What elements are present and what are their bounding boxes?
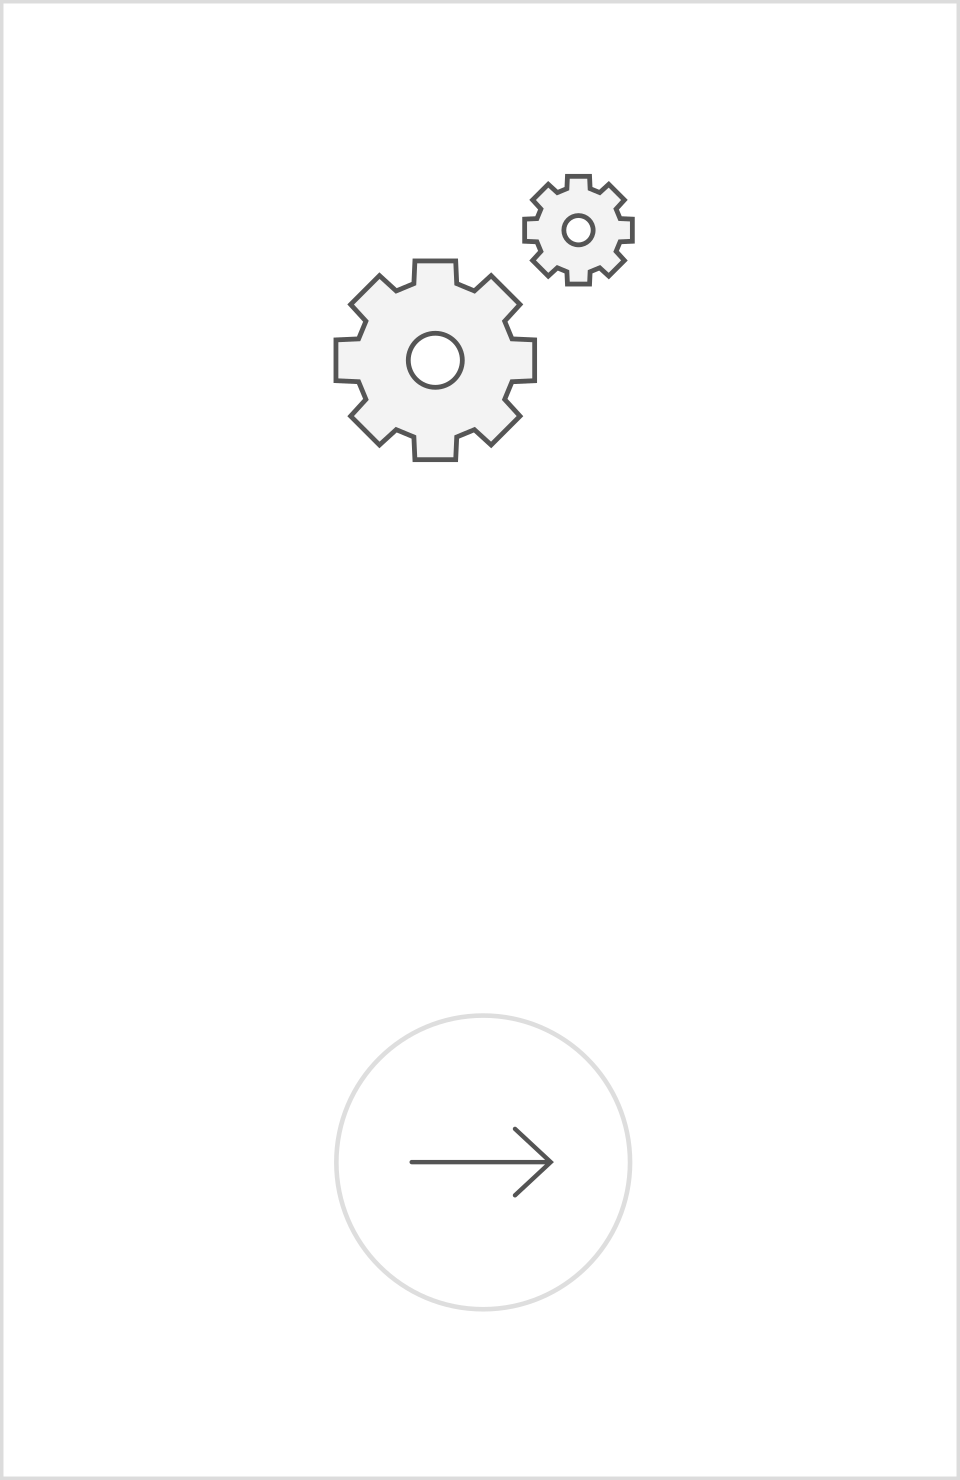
button[interactable]: Continue <box>336 1016 630 1309</box>
